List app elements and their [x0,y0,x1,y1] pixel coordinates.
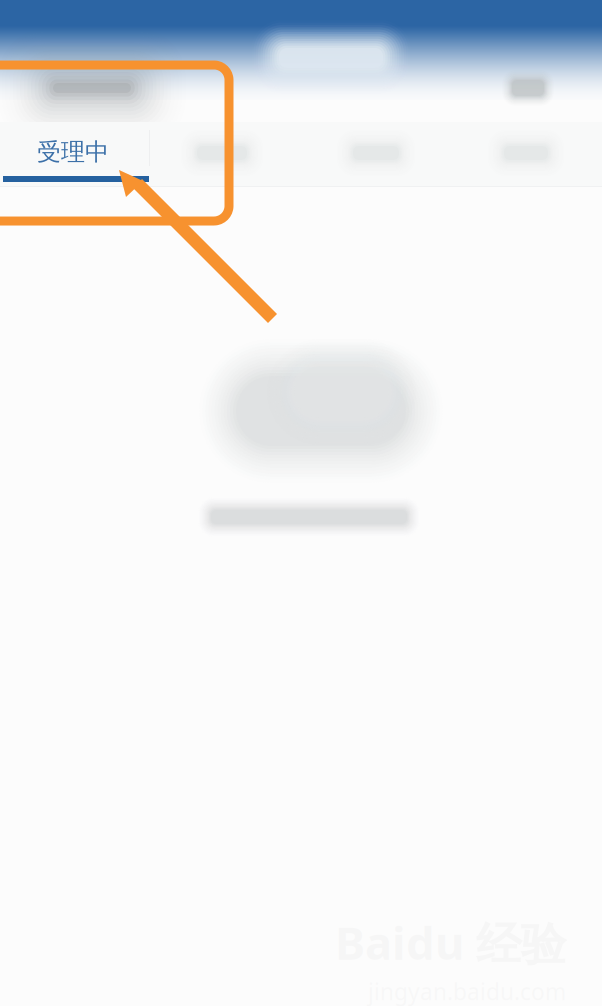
button[interactable]: 受理中 [1,122,151,186]
button[interactable]: More options [0,0,56,40]
staticText: 受理中 [37,137,109,167]
button[interactable]: Tab 3 [301,122,451,186]
button[interactable]: Tab 4 [451,122,601,186]
button[interactable]: Tab 2 [151,122,301,186]
